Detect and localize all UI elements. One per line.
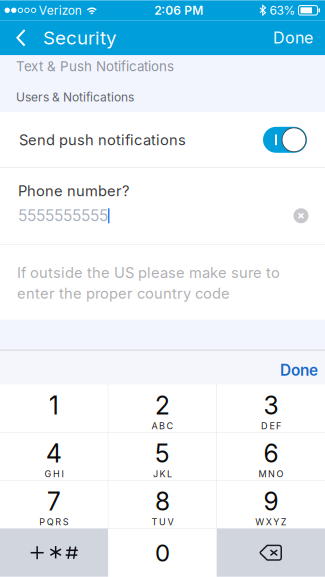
button[interactable]: 8 (109, 481, 216, 529)
staticText: If outside the US please make sure to (17, 264, 280, 281)
staticText: WXYZ (255, 516, 287, 527)
staticText: TUV (151, 516, 173, 527)
staticText: 5 (155, 439, 170, 468)
staticText: 2:06 PM (154, 3, 203, 17)
staticText: 9 (264, 487, 279, 516)
staticText: DEF (261, 420, 281, 431)
staticText: MNO (259, 468, 284, 479)
staticText: 3 (264, 391, 279, 420)
button[interactable]: 2 (109, 385, 216, 433)
staticText: 2 (155, 391, 170, 420)
staticText: Verizon (36, 3, 82, 17)
staticText: Send push notifications (19, 131, 186, 149)
button[interactable]: 1 (0, 385, 108, 433)
staticText: 6 (264, 439, 279, 468)
staticText: enter the proper country code (17, 284, 230, 302)
button[interactable]: Send push notifications (0, 112, 325, 167)
staticText: 4 (46, 439, 62, 468)
staticText: JKL (153, 468, 172, 479)
button[interactable]: Plus, star, hash (0, 529, 108, 577)
staticText: ABC (151, 420, 173, 431)
button[interactable]: 7 (0, 481, 108, 529)
button[interactable]: 6 (217, 433, 325, 481)
button[interactable]: Done (268, 351, 325, 385)
staticText: 63% (266, 3, 295, 17)
staticText: Phone number? (18, 182, 129, 200)
button[interactable]: Done (261, 20, 325, 55)
button[interactable]: 4 (0, 433, 108, 481)
button[interactable]: 5 (109, 433, 216, 481)
staticText: 0 (155, 538, 170, 567)
staticText: 8 (155, 487, 170, 516)
staticText: Users & Notifications (16, 90, 134, 104)
staticText: 7 (47, 487, 61, 516)
staticText: Done (280, 361, 318, 379)
button[interactable]: 9 (217, 481, 325, 529)
staticText: Done (273, 28, 313, 47)
button[interactable]: Delete (217, 529, 325, 577)
staticText: 5555555555 (18, 206, 108, 225)
button[interactable]: 0 (108, 529, 217, 577)
staticText: PQRS (39, 516, 69, 527)
button[interactable]: 3 (217, 385, 325, 433)
staticText: Security (43, 26, 116, 49)
button[interactable]: Back (0, 20, 43, 55)
staticText: GHI (44, 468, 63, 479)
staticText: 1 (49, 391, 59, 420)
staticText: Text & Push Notifications (16, 58, 174, 74)
